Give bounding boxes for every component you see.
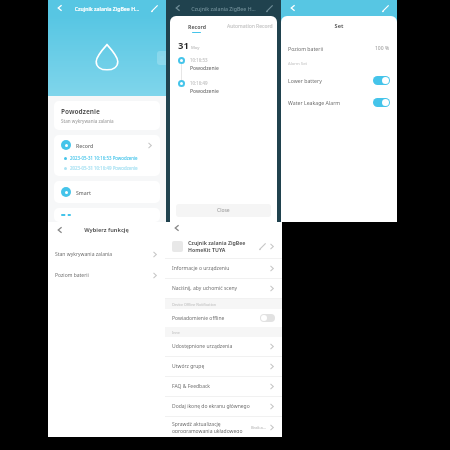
staticText: Sprawdź aktualizację — [172, 421, 221, 428]
button[interactable]: Back — [286, 1, 300, 15]
button[interactable]: Toggle — [373, 76, 390, 85]
button[interactable]: Panel — [157, 51, 166, 65]
staticText: Naciśnij, aby uchomić sceny — [172, 285, 269, 292]
staticText: Powiadomienie offline — [172, 315, 260, 322]
staticText: Stan wykrywania zalania — [55, 251, 152, 258]
button[interactable]: Powiadomienie offline — [165, 309, 282, 327]
staticText: 31 — [178, 39, 189, 52]
button[interactable]: Stan wykrywania zalania — [48, 244, 165, 265]
staticText: Inne — [172, 330, 180, 335]
button[interactable]: Back — [171, 1, 185, 15]
button[interactable]: Naciśnij, aby uchomić sceny — [165, 279, 282, 298]
staticText: 100 % — [375, 45, 390, 52]
staticText: Close — [217, 207, 230, 214]
staticText: 10:16:49 — [190, 80, 208, 86]
staticText: Czujnik zalania ZigBee H... — [67, 5, 147, 12]
staticText: Device Offline Notification — [172, 302, 216, 307]
staticText: Udostępnione urządzenia — [172, 343, 269, 350]
button[interactable]: Water Leakage Alarm — [281, 93, 397, 112]
staticText: Smart — [76, 189, 153, 196]
staticText: HomeKit TUYA — [188, 246, 226, 253]
button[interactable]: Back — [53, 223, 67, 237]
button[interactable]: Back — [170, 222, 184, 234]
button[interactable]: FAQ & Feedback — [165, 377, 282, 396]
button[interactable]: Record — [170, 23, 223, 33]
staticText: Set — [281, 22, 397, 30]
button[interactable]: Informacje o urządzeniu — [165, 259, 282, 278]
staticText: 10:16:53 — [190, 57, 208, 63]
button[interactable]: Set — [54, 208, 160, 222]
button[interactable]: Record — [54, 135, 160, 176]
staticText: 2023-05-31 10:16:53 Powodzenie — [70, 155, 138, 161]
button[interactable]: Sprawdź aktualizację — [165, 417, 282, 437]
staticText: Informacje o urządzeniu — [172, 265, 269, 272]
staticText: Dodaj ikonę do ekranu głównego — [172, 403, 269, 410]
button[interactable]: Edit — [378, 1, 392, 15]
staticText: Brak a... — [251, 425, 267, 430]
staticText: Czujnik zalania ZigBee H... — [185, 5, 262, 12]
button[interactable]: Powodzenie — [54, 101, 160, 130]
staticText: Czujnik zalania ZigBee — [188, 239, 246, 246]
button[interactable]: Close — [176, 204, 271, 217]
button[interactable]: Back — [53, 1, 67, 15]
staticText: Utwórz grupę — [172, 363, 269, 370]
button[interactable]: Toggle — [260, 314, 275, 322]
button[interactable]: Edit — [262, 1, 276, 15]
button[interactable]: Udostępnione urządzenia — [165, 337, 282, 356]
staticText: Alarm Set — [288, 61, 308, 67]
staticText: Wybierz funkcję — [67, 226, 146, 234]
staticText: Automation Record — [227, 23, 273, 30]
staticText: Poziom baterii — [288, 45, 375, 52]
staticText: Record — [188, 23, 206, 30]
button[interactable]: Smart — [54, 181, 160, 203]
button[interactable]: Toggle — [373, 98, 390, 107]
staticText: FAQ & Feedback — [172, 383, 269, 390]
staticText: Lower battery — [288, 77, 373, 84]
button[interactable]: Czujnik zalania ZigBee — [165, 234, 282, 258]
button[interactable]: Lower battery — [281, 71, 397, 90]
button[interactable]: Poziom baterii — [48, 265, 165, 286]
staticText: oprogramowania układowego — [172, 428, 243, 433]
staticText: Powodzenie — [190, 88, 219, 95]
staticText: Powodzenie — [61, 107, 100, 116]
button[interactable]: Poziom baterii — [281, 40, 397, 57]
button[interactable]: Dodaj ikonę do ekranu głównego — [165, 397, 282, 416]
staticText: Stan wykrywania zalania — [61, 118, 114, 124]
button[interactable]: Automation Record — [223, 23, 277, 30]
button[interactable]: Utwórz grupę — [165, 357, 282, 376]
staticText: Powodzenie — [190, 65, 219, 72]
button[interactable]: Edit — [147, 1, 161, 15]
staticText: Record — [76, 142, 147, 149]
staticText: Poziom baterii — [55, 272, 152, 279]
button[interactable]: Edit — [255, 239, 269, 253]
staticText: May — [191, 45, 200, 51]
staticText: 2023-05-31 10:16:49 Powodzenie — [70, 165, 138, 171]
staticText: Water Leakage Alarm — [288, 99, 373, 106]
